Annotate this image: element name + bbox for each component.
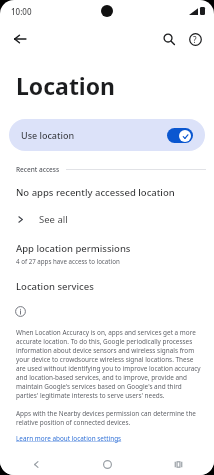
staticText: Apps with the Nearby devices permission … bbox=[16, 409, 204, 427]
staticText: App location permissions bbox=[16, 242, 131, 255]
staticText: See all bbox=[39, 213, 68, 226]
staticText: Use location bbox=[21, 129, 167, 141]
button[interactable]: Back bbox=[6, 25, 34, 53]
staticText: ? bbox=[193, 34, 197, 45]
button[interactable]: App location permissions bbox=[0, 242, 214, 265]
staticText: When Location Accuracy is on, apps and s… bbox=[16, 328, 204, 400]
button[interactable]: Back bbox=[0, 453, 72, 475]
button[interactable]: See all bbox=[0, 210, 214, 229]
staticText: 4 of 27 apps have access to location bbox=[16, 257, 120, 265]
button[interactable]: Home bbox=[72, 453, 143, 475]
staticText: 10:00 bbox=[11, 6, 32, 17]
staticText: Location bbox=[16, 70, 116, 101]
button[interactable]: Learn more about location settings bbox=[16, 434, 122, 443]
button[interactable]: Use location bbox=[9, 119, 205, 151]
button[interactable]: Help bbox=[182, 26, 208, 52]
staticText: No apps recently accessed location bbox=[16, 186, 175, 199]
staticText: Location services bbox=[16, 280, 94, 293]
button[interactable]: Search bbox=[156, 26, 182, 52]
button[interactable]: Recent apps bbox=[143, 453, 214, 475]
staticText: Recent access bbox=[16, 165, 60, 174]
